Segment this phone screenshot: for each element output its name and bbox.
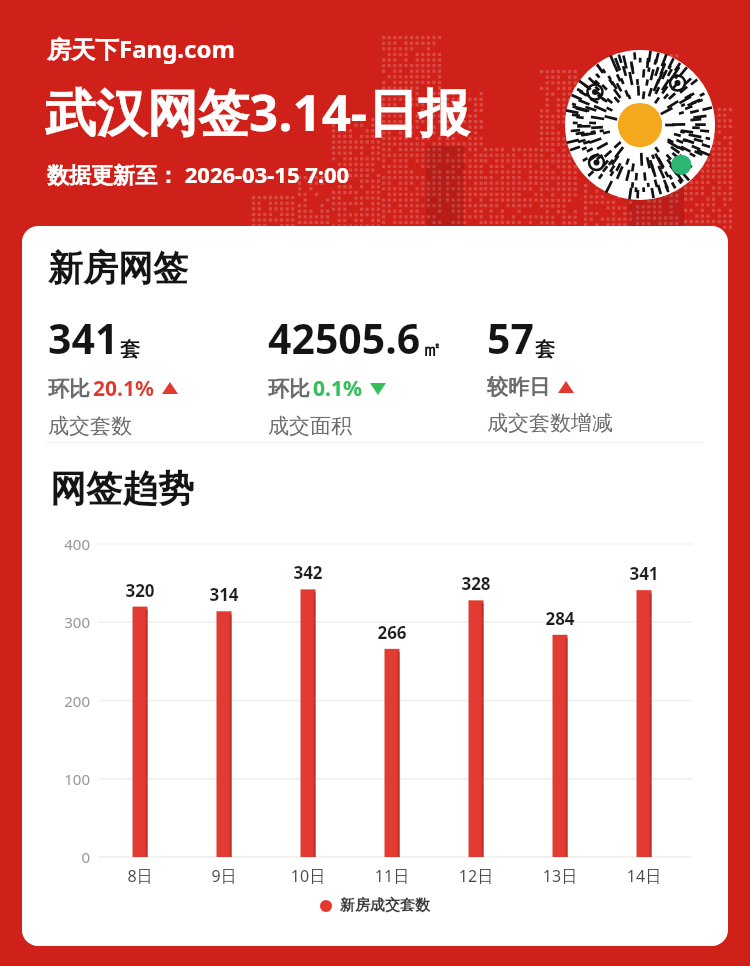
staticText: 新房网签 xyxy=(48,246,188,290)
staticText: 300 xyxy=(40,612,90,632)
staticText: 新房成交套数 xyxy=(340,896,430,915)
staticText: 成交套数增减 xyxy=(487,410,613,436)
staticText: 328 xyxy=(451,572,501,595)
staticText: 20.1% xyxy=(93,374,154,403)
staticText: 341 xyxy=(48,310,119,366)
staticText: 342 xyxy=(283,561,333,584)
staticText: 11日 xyxy=(365,865,419,887)
staticText: 10日 xyxy=(281,865,335,887)
staticText: 较昨日 xyxy=(487,374,550,400)
staticText: 数据更新至： 2026-03-15 7:00 xyxy=(47,159,350,189)
staticText: 套 xyxy=(535,337,555,362)
staticText: 100 xyxy=(40,769,90,789)
staticText: 341 xyxy=(619,562,669,585)
button[interactable]: 57 xyxy=(487,310,613,436)
button[interactable]: 42505.6 xyxy=(268,310,442,439)
staticText: 200 xyxy=(40,691,90,711)
staticText: 网签趋势 xyxy=(50,466,194,511)
button[interactable]: 房天下Fang.com xyxy=(47,32,235,65)
staticText: 套 xyxy=(120,337,140,362)
staticText: 9日 xyxy=(197,865,251,887)
staticText: 环比 xyxy=(268,376,310,402)
staticText: 0.1% xyxy=(313,374,362,403)
button[interactable]: 新房成交套数 xyxy=(22,896,728,915)
button[interactable]: 341 xyxy=(48,310,180,439)
staticText: 12日 xyxy=(449,865,503,887)
staticText: 266 xyxy=(367,621,417,644)
staticText: 武汉网签3.14-日报 xyxy=(45,76,470,146)
staticText: 环比 xyxy=(48,376,90,402)
staticText: ㎡ xyxy=(422,337,442,362)
staticText: 0 xyxy=(40,847,90,867)
staticText: 14日 xyxy=(617,865,671,887)
staticText: 314 xyxy=(199,583,249,606)
staticText: 42505.6 xyxy=(268,310,421,366)
staticText: 57 xyxy=(487,310,534,366)
staticText: 8日 xyxy=(113,865,167,887)
staticText: 成交套数 xyxy=(48,413,132,439)
staticText: 320 xyxy=(115,579,165,602)
staticText: 284 xyxy=(535,607,585,630)
staticText: 400 xyxy=(40,534,90,554)
staticText: 成交面积 xyxy=(268,413,352,439)
staticText: 13日 xyxy=(533,865,587,887)
button[interactable]: 小程序二维码 xyxy=(565,50,715,200)
